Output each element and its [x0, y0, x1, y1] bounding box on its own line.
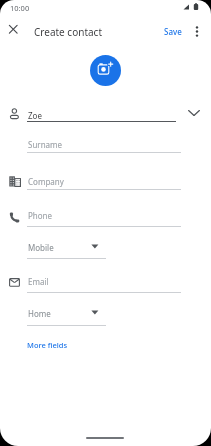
button[interactable]: Home: [27, 304, 106, 324]
staticText: More fields: [27, 340, 68, 350]
button[interactable]: [5, 21, 21, 37]
button[interactable]: Zoe: [27, 104, 177, 121]
button[interactable]: [90, 55, 121, 86]
button[interactable]: More fields: [25, 337, 75, 351]
button[interactable]: [190, 23, 204, 40]
button[interactable]: Company: [27, 172, 181, 189]
button[interactable]: Save: [158, 22, 188, 40]
button[interactable]: Email: [27, 272, 181, 289]
button[interactable]: [185, 105, 203, 121]
staticText: Home: [28, 308, 51, 319]
staticText: Mobile: [28, 242, 54, 253]
staticText: Save: [164, 26, 182, 37]
staticText: Phone: [28, 210, 53, 221]
staticText: Zoe: [28, 110, 42, 121]
button[interactable]: Mobile: [27, 238, 106, 258]
button[interactable]: Phone: [27, 206, 181, 223]
staticText: Email: [28, 276, 49, 287]
staticText: Surname: [28, 139, 63, 150]
button[interactable]: Surname: [27, 135, 181, 152]
staticText: Create contact: [34, 25, 103, 39]
staticText: 10:00: [10, 3, 30, 13]
staticText: Company: [28, 176, 64, 187]
